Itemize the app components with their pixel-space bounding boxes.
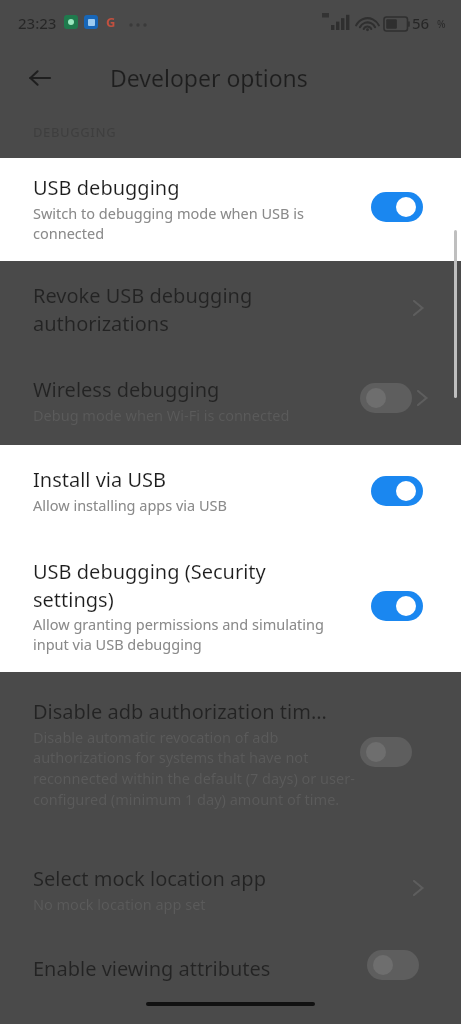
staticText: G <box>106 13 116 31</box>
button[interactable]: Install via USB <box>0 452 461 528</box>
staticText: Select mock location app <box>33 865 266 892</box>
staticText: % <box>437 17 446 31</box>
staticText: Allow installing apps via USB <box>33 495 227 515</box>
button[interactable]: Back <box>20 58 60 98</box>
button[interactable]: Revoke USB debugging authorizations <box>0 268 461 348</box>
staticText: 56 <box>412 13 430 33</box>
button[interactable]: Toggle on <box>371 192 423 222</box>
button[interactable]: USB debugging <box>0 158 461 261</box>
staticText: Enable viewing attributes <box>33 955 271 982</box>
button[interactable]: USB debugging (Security settings) <box>0 548 461 666</box>
staticText: Disable adb authorization tim… <box>33 698 327 725</box>
button[interactable]: Toggle off <box>360 737 412 767</box>
staticText: Allow granting permissions and simulatin… <box>33 614 358 655</box>
staticText: Install via USB <box>33 466 167 493</box>
button[interactable]: Wireless debugging <box>0 363 461 435</box>
staticText: No mock location app set <box>33 894 206 914</box>
staticText: USB debugging (Security settings) <box>33 558 313 613</box>
button[interactable]: Disable adb authorization tim… <box>0 688 461 833</box>
staticText: Wireless debugging <box>33 376 220 403</box>
staticText: Developer options <box>110 62 308 93</box>
button[interactable]: Toggle off <box>367 950 419 980</box>
staticText: Disable automatic revocation of adb auth… <box>33 727 356 810</box>
staticText: DEBUGGING <box>33 123 117 141</box>
staticText: 23:23 <box>18 13 57 33</box>
button[interactable]: Toggle on <box>371 591 423 621</box>
button[interactable]: Enable viewing attributes <box>0 945 461 993</box>
button[interactable]: Select mock location app <box>0 855 461 925</box>
staticText: Switch to debugging mode when USB is con… <box>33 203 338 244</box>
button[interactable]: Toggle on <box>371 476 423 506</box>
staticText: USB debugging <box>33 174 180 201</box>
staticText: Debug mode when Wi-Fi is connected <box>33 405 290 425</box>
button[interactable]: Toggle off <box>360 383 412 413</box>
staticText: Revoke USB debugging authorizations <box>33 282 323 337</box>
